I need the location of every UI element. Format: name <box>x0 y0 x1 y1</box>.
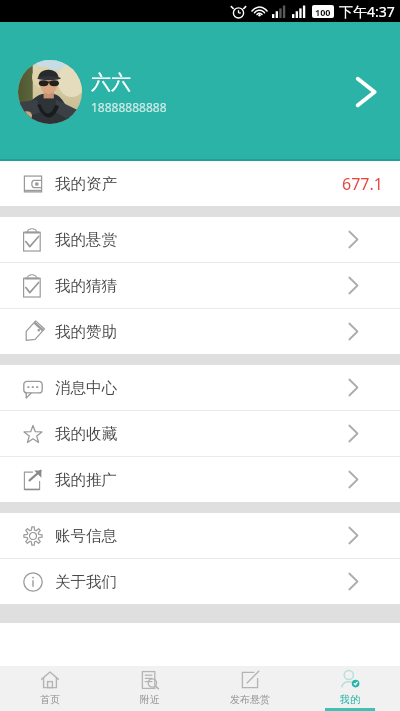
staticText: 六六 <box>91 70 131 95</box>
button[interactable]: 我的猜猜 <box>0 263 400 308</box>
button[interactable]: 我的 <box>300 666 400 711</box>
staticText: 账号信息 <box>55 526 117 546</box>
button[interactable]: 关于我们 <box>0 559 400 604</box>
staticText: 发布悬赏 <box>230 693 270 706</box>
other: Open profile <box>350 77 380 107</box>
staticText: 18888888888 <box>91 99 167 115</box>
button[interactable]: 我的赞助 <box>0 309 400 354</box>
button[interactable]: 我的资产 <box>0 161 400 206</box>
staticText: 关于我们 <box>55 572 117 592</box>
button[interactable]: 消息中心 <box>0 365 400 410</box>
staticText: 下午4:37 <box>339 2 395 21</box>
staticText: 我的赞助 <box>55 322 117 342</box>
staticText: 我的 <box>340 693 360 706</box>
button[interactable]: 发布悬赏 <box>200 666 300 711</box>
staticText: 我的推广 <box>55 470 117 490</box>
staticText: 消息中心 <box>55 378 117 398</box>
staticText: 首页 <box>40 693 60 706</box>
button[interactable]: 我的推广 <box>0 457 400 502</box>
staticText: 我的收藏 <box>55 424 117 444</box>
button[interactable]: 附近 <box>100 666 200 711</box>
staticText: 100 <box>315 6 331 18</box>
button[interactable]: 我的悬赏 <box>0 217 400 262</box>
button[interactable]: 我的收藏 <box>0 411 400 456</box>
staticText: 我的悬赏 <box>55 230 117 250</box>
button[interactable]: 首页 <box>0 666 100 711</box>
button[interactable]: 账号信息 <box>0 513 400 558</box>
button[interactable]: 六六 <box>0 22 400 161</box>
staticText: 677.1 <box>342 173 383 195</box>
staticText: 我的资产 <box>55 174 117 194</box>
staticText: 我的猜猜 <box>55 276 117 296</box>
staticText: 附近 <box>140 693 160 706</box>
